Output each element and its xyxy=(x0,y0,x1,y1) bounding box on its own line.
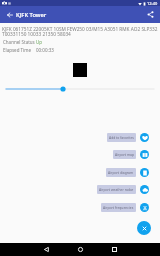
staticText: KJFK 061751Z 22005KT 10SM FEW250 03/M15 … xyxy=(2,26,158,38)
button[interactable]: Back xyxy=(2,6,17,23)
staticText: 12:40 xyxy=(147,1,158,6)
staticText: 00:00:33 xyxy=(36,47,54,53)
button[interactable]: Share xyxy=(143,6,157,23)
button[interactable]: Home xyxy=(72,243,88,256)
button[interactable]: Airport frequencies xyxy=(0,202,149,213)
button[interactable]: Add to favorites xyxy=(0,132,149,143)
staticText: Up xyxy=(36,39,43,45)
button[interactable]: Airport diagram xyxy=(0,167,149,178)
staticText: Elapsed Time xyxy=(3,47,31,53)
staticText: Airport weather radar xyxy=(99,187,134,192)
staticText: Airport frequencies xyxy=(103,205,134,210)
staticText: KJFK Tower xyxy=(16,11,47,19)
staticText: Airport diagram xyxy=(108,170,134,175)
staticText: Add to favorites xyxy=(109,135,134,140)
button[interactable]: Airport weather radar xyxy=(0,184,149,195)
button[interactable]: Recents xyxy=(106,243,122,256)
button[interactable]: Airport map xyxy=(0,149,149,160)
staticText: Airport map xyxy=(115,152,134,157)
button[interactable]: Back xyxy=(38,243,54,256)
staticText: Channel Status xyxy=(3,39,35,45)
button[interactable]: Close menu xyxy=(137,221,151,235)
